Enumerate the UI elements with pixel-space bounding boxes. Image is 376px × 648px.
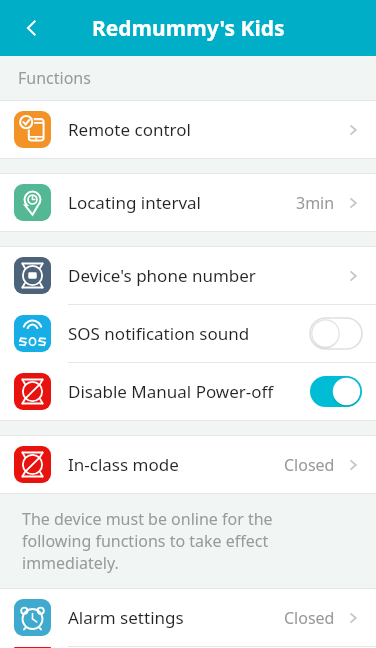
button[interactable]: Alarm settings	[0, 589, 376, 646]
button[interactable]: Back	[8, 4, 56, 52]
staticText: Remote control	[68, 118, 344, 141]
staticText: Alarm settings	[68, 606, 284, 629]
staticText: Locating interval	[68, 191, 296, 214]
button[interactable]	[0, 647, 376, 648]
staticText: The device must be online for the follow…	[22, 508, 346, 574]
staticText: 3min	[296, 192, 335, 214]
button[interactable]: Toggle on	[310, 376, 362, 407]
staticText: Redmummy's Kids	[92, 14, 285, 43]
button[interactable]: In-class mode	[0, 436, 376, 493]
staticText: Device's phone number	[68, 264, 344, 287]
staticText: Closed	[284, 607, 335, 629]
button[interactable]: Toggle off	[310, 318, 362, 349]
staticText: Closed	[284, 454, 335, 476]
button[interactable]: Remote control	[0, 101, 376, 158]
button[interactable]: Disable Manual Power-off	[0, 363, 376, 420]
button[interactable]: Locating interval	[0, 174, 376, 231]
staticText: SOS notification sound	[68, 322, 310, 345]
staticText: Disable Manual Power-off	[68, 380, 310, 403]
staticText: In-class mode	[68, 453, 284, 476]
button[interactable]: Device's phone number	[0, 247, 376, 304]
staticText: Functions	[18, 67, 91, 89]
button[interactable]: SOS notification sound	[0, 305, 376, 362]
